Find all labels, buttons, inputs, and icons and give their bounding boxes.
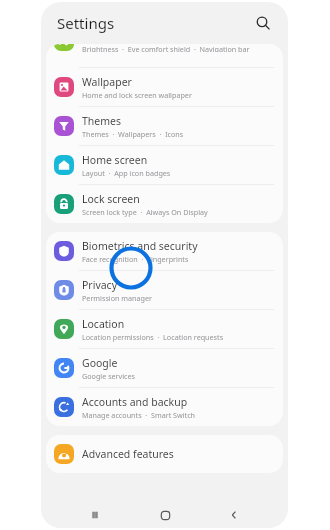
- button[interactable]: Location: [46, 310, 283, 348]
- staticText: Google: [82, 356, 118, 370]
- staticText: Accounts and backup: [82, 395, 188, 409]
- staticText: Permission manager: [82, 293, 153, 303]
- staticText: Face recognition · Fingerprints: [82, 254, 189, 264]
- staticText: Biometrics and security: [82, 239, 198, 253]
- button[interactable]: Biometrics and security: [46, 232, 283, 270]
- staticText: Advanced features: [82, 447, 174, 461]
- button[interactable]: Lock screen: [46, 185, 283, 223]
- staticText: Location: [82, 317, 125, 331]
- staticText: Privacy: [82, 278, 118, 292]
- button[interactable]: Search: [250, 10, 276, 36]
- button[interactable]: Themes: [46, 107, 283, 145]
- button[interactable]: Privacy: [46, 271, 283, 309]
- staticText: Google services: [82, 371, 136, 381]
- staticText: Brightness · Eye comfort shield · Naviga…: [82, 44, 250, 52]
- staticText: Home screen: [82, 153, 148, 167]
- button[interactable]: Recent apps: [80, 502, 110, 528]
- staticText: Settings: [57, 13, 115, 33]
- staticText: Themes: [82, 114, 122, 128]
- button[interactable]: Home: [150, 502, 180, 528]
- button[interactable]: Accounts and backup: [46, 388, 283, 426]
- staticText: Location permissions · Location requests: [82, 332, 224, 342]
- button[interactable]: Google: [46, 349, 283, 387]
- staticText: Screen lock type · Always On Display: [82, 207, 208, 217]
- button[interactable]: Display: [46, 44, 283, 67]
- staticText: Wallpaper: [82, 75, 132, 89]
- staticText: Layout · App icon badges: [82, 168, 171, 178]
- button[interactable]: Home screen: [46, 146, 283, 184]
- button[interactable]: Advanced features: [46, 435, 283, 473]
- staticText: Home and lock screen wallpaper: [82, 90, 192, 100]
- button[interactable]: Back: [219, 502, 249, 528]
- staticText: Manage accounts · Smart Switch: [82, 410, 196, 420]
- staticText: Themes · Wallpapers · Icons: [82, 129, 184, 139]
- button[interactable]: Wallpaper: [46, 68, 283, 106]
- staticText: Lock screen: [82, 192, 140, 206]
